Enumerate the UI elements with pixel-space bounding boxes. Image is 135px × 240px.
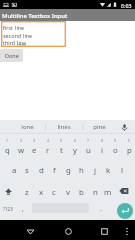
button[interactable]: Shift (0, 183, 17, 199)
staticText: q (5, 145, 10, 156)
staticText: 3 (33, 138, 36, 143)
staticText: t (60, 145, 63, 156)
button[interactable]: a (7, 160, 21, 180)
button[interactable]: y (68, 140, 82, 160)
button[interactable]: Home (58, 221, 78, 240)
button[interactable]: c (47, 182, 61, 202)
button[interactable]: h (74, 160, 88, 180)
button[interactable]: n (88, 182, 102, 202)
button[interactable]: b (74, 182, 88, 202)
staticText: b (79, 187, 84, 198)
staticText: j (94, 165, 97, 176)
button[interactable]: p (122, 140, 135, 160)
button[interactable]: Voice input (114, 120, 135, 134)
staticText: 1 (6, 138, 9, 143)
staticText: i (101, 145, 104, 156)
staticText: 9 (114, 138, 117, 143)
button[interactable]: f (47, 160, 61, 180)
staticText: lone (21, 123, 34, 131)
button[interactable]: k (101, 160, 115, 180)
staticText: s (25, 165, 29, 176)
staticText: u (86, 145, 91, 156)
staticText: line (23, 32, 33, 39)
staticText: a (12, 165, 17, 176)
button[interactable]: u (81, 140, 95, 160)
button[interactable]: q (0, 140, 14, 160)
staticText: v (66, 187, 70, 198)
staticText: d (39, 165, 44, 176)
button[interactable]: i (95, 140, 109, 160)
button[interactable]: Back (20, 221, 40, 240)
staticText: 5 (60, 138, 63, 143)
button[interactable] (1, 21, 66, 47)
staticText: 8 (101, 138, 104, 143)
button[interactable]: t (54, 140, 68, 160)
staticText: 2 (20, 138, 23, 143)
staticText: ?123 (3, 206, 13, 212)
button[interactable]: j (88, 160, 102, 180)
button[interactable]: l (115, 160, 129, 180)
staticText: o (113, 145, 118, 156)
button[interactable]: z (20, 182, 34, 202)
staticText: second (3, 32, 23, 39)
button[interactable]: lines (46, 120, 82, 133)
button[interactable]: pine (81, 120, 117, 133)
button[interactable]: s (20, 160, 34, 180)
staticText: p (127, 145, 132, 156)
staticText: , (22, 204, 24, 214)
staticText: line (17, 39, 27, 46)
staticText: l (121, 165, 124, 176)
staticText: g (66, 165, 71, 176)
staticText: c (52, 187, 56, 198)
button[interactable]: x (34, 182, 48, 202)
staticText: . (100, 204, 102, 214)
button[interactable]: lone (9, 120, 45, 133)
button[interactable]: d (34, 160, 48, 180)
button[interactable]: Recents (94, 221, 114, 240)
button[interactable]: g (61, 160, 75, 180)
button[interactable]: Backspace (114, 183, 134, 199)
button[interactable]: e (27, 140, 41, 160)
staticText: 0 (128, 138, 131, 143)
staticText: r (46, 145, 50, 156)
staticText: y (73, 145, 77, 156)
button[interactable]: m (101, 182, 115, 202)
staticText: 4 (47, 138, 50, 143)
button[interactable]: w (14, 140, 28, 160)
staticText: w (18, 145, 25, 156)
staticText: pine (93, 123, 106, 131)
staticText: k (106, 165, 111, 176)
button[interactable]: r (41, 140, 55, 160)
button[interactable]: . (94, 201, 107, 217)
button[interactable]: o (108, 140, 122, 160)
staticText: e (32, 145, 37, 156)
staticText: line (15, 24, 25, 31)
button[interactable]: More options (121, 221, 133, 240)
staticText: lines (57, 123, 71, 131)
staticText: first (3, 24, 15, 31)
button[interactable]: Done (0, 49, 23, 62)
button[interactable]: v (61, 182, 75, 202)
button[interactable]: Enter (117, 203, 133, 219)
button[interactable]: ?123 (0, 201, 16, 217)
staticText: third (3, 39, 17, 46)
staticText: x (39, 187, 44, 198)
staticText: Done (5, 52, 19, 59)
staticText: h (79, 165, 84, 176)
staticText: 7 (87, 138, 90, 143)
staticText: f (53, 165, 56, 176)
staticText: 6:03 (121, 2, 132, 9)
staticText: Multiline Textbox Input (2, 12, 68, 20)
staticText: m (104, 187, 112, 198)
staticText: n (93, 187, 98, 198)
button[interactable]: , (16, 201, 29, 217)
staticText: 6 (74, 138, 77, 143)
staticText: z (25, 187, 29, 198)
